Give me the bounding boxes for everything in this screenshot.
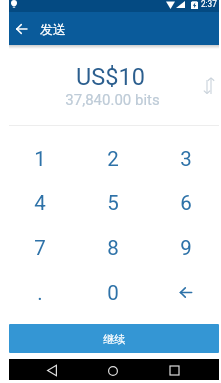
button[interactable]: Back — [40, 360, 64, 381]
button[interactable]: 7 — [3, 225, 76, 270]
button[interactable]: . — [3, 270, 76, 315]
staticText: US$10 — [76, 63, 145, 91]
button[interactable]: Swap currency — [197, 73, 221, 97]
button[interactable]: Home — [101, 360, 125, 381]
button[interactable]: 5 — [76, 181, 149, 225]
staticText: . — [37, 281, 43, 305]
staticText: 9 — [180, 236, 192, 260]
other: Backspace — [174, 280, 198, 304]
button[interactable]: 8 — [76, 225, 149, 270]
button[interactable]: 3 — [149, 137, 221, 181]
staticText: 4 — [34, 191, 46, 215]
button[interactable]: 1 — [3, 137, 76, 181]
staticText: 0 — [107, 281, 119, 305]
staticText: 8 — [107, 236, 119, 260]
staticText: 2 — [107, 147, 119, 171]
button[interactable]: 0 — [76, 270, 149, 315]
button[interactable]: 继续 — [9, 324, 219, 353]
button[interactable]: 4 — [3, 181, 76, 225]
button[interactable]: 2 — [76, 137, 149, 181]
staticText: 3 — [180, 147, 192, 171]
button[interactable]: Backspace — [149, 270, 221, 315]
staticText: 1 — [34, 147, 46, 171]
button[interactable]: 6 — [149, 181, 221, 225]
button[interactable]: Recents — [162, 360, 186, 381]
staticText: 7 — [34, 236, 46, 260]
staticText: 发送 — [40, 21, 66, 37]
staticText: 5 — [107, 191, 119, 215]
staticText: 继续 — [103, 332, 125, 346]
button[interactable]: 9 — [149, 225, 221, 270]
staticText: 37,840.00 bits — [65, 91, 160, 107]
staticText: 6 — [180, 191, 192, 215]
staticText: 2:37 — [201, 0, 217, 9]
button[interactable]: Back — [7, 15, 35, 43]
